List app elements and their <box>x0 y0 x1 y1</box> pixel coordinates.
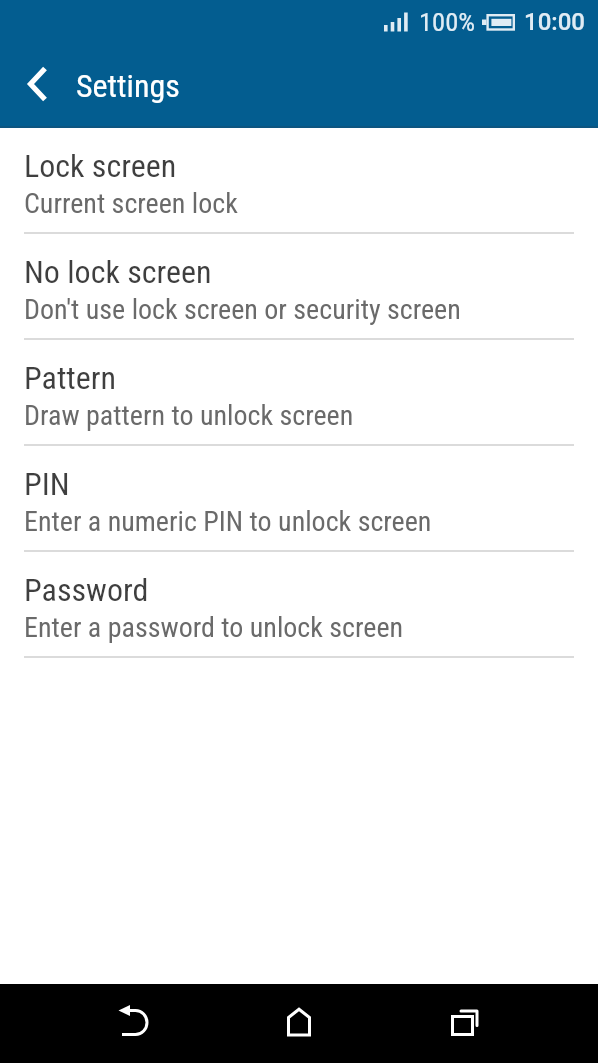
staticText: Enter a password to unlock screen <box>24 611 404 644</box>
staticText: Password <box>24 571 149 609</box>
staticText: No lock screen <box>24 253 212 291</box>
staticText: Pattern <box>24 359 117 397</box>
staticText: Don't use lock screen or security screen <box>24 293 461 326</box>
staticText: 10:00 <box>524 8 585 36</box>
button[interactable]: Pattern <box>0 340 598 446</box>
button[interactable] <box>50 984 216 1059</box>
staticText: 100% <box>419 6 476 37</box>
staticText: Settings <box>76 67 180 105</box>
button[interactable] <box>216 984 382 1059</box>
button[interactable]: Password <box>0 552 598 658</box>
button[interactable]: Lock screen <box>0 128 598 234</box>
button[interactable] <box>382 984 548 1059</box>
staticText: Draw pattern to unlock screen <box>24 399 354 432</box>
staticText: Lock screen <box>24 147 177 185</box>
button[interactable]: PIN <box>0 446 598 552</box>
staticText: Enter a numeric PIN to unlock screen <box>24 505 432 538</box>
button[interactable]: No lock screen <box>0 234 598 340</box>
staticText: PIN <box>24 465 70 503</box>
button[interactable] <box>6 60 70 108</box>
staticText: Current screen lock <box>24 187 238 220</box>
